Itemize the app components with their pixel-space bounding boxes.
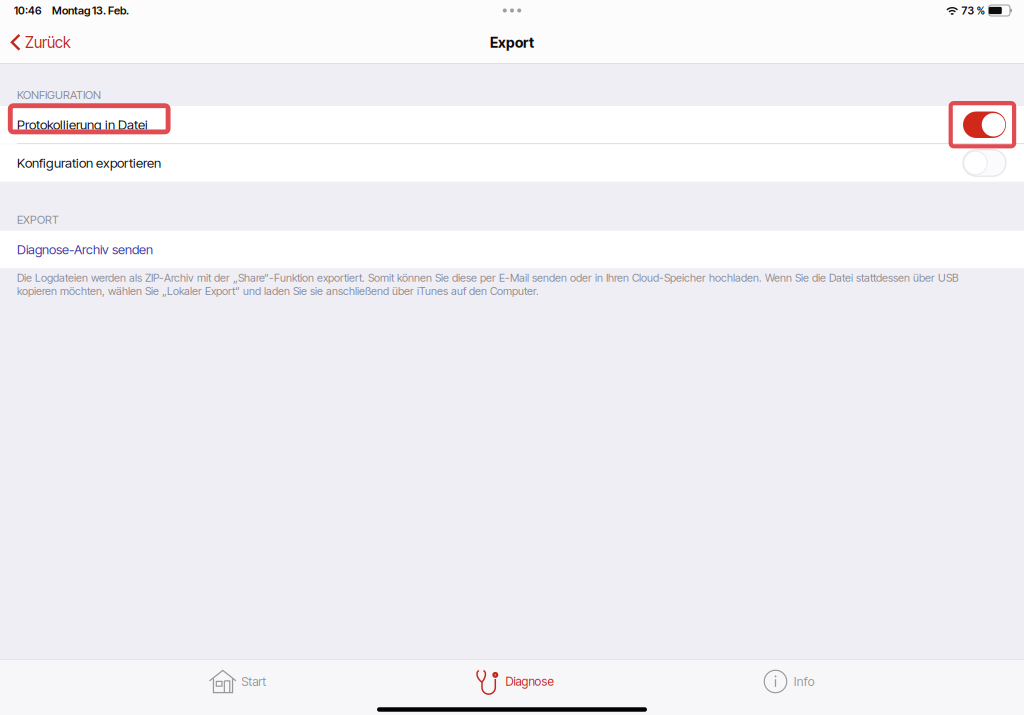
staticText: Zurück (25, 33, 71, 52)
staticText: Info (794, 674, 815, 689)
staticText: KONFIGURATION (17, 88, 101, 102)
staticText: Diagnose (505, 674, 553, 689)
button[interactable]: Diagnose-Archiv senden (0, 231, 1024, 268)
button[interactable]: Info (651, 659, 927, 704)
staticText: Diagnose-Archiv senden (17, 241, 153, 257)
staticText: Die Logdateien werden als ZIP-Archiv mit… (17, 271, 959, 298)
button[interactable]: Diagnose (375, 659, 651, 704)
staticText: Montag 13. Feb. (52, 4, 129, 17)
staticText: 10:46 (14, 4, 42, 17)
staticText: Protokollierung in Datei (17, 117, 148, 133)
staticText: Start (241, 674, 266, 689)
button[interactable]: Start (99, 659, 375, 704)
button[interactable]: Zurück (0, 22, 81, 63)
staticText: 73 % (962, 4, 986, 17)
staticText: EXPORT (17, 213, 59, 226)
button[interactable]: Protokollierung in Datei (0, 106, 1024, 143)
staticText: Export (490, 34, 534, 51)
button[interactable]: Konfiguration exportieren (0, 144, 1024, 182)
staticText: Konfiguration exportieren (17, 155, 161, 171)
